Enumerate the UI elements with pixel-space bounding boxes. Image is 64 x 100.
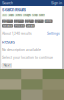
button[interactable]: Shop (32, 14, 38, 16)
staticText: Sign in (51, 1, 62, 5)
button[interactable]: News (15, 14, 22, 16)
staticText: Review (26, 18, 33, 24)
staticText: Hours (36, 18, 43, 24)
button[interactable]: All (2, 14, 7, 16)
button[interactable]: Sign in (51, 1, 62, 5)
staticText: Nearby (3, 24, 12, 27)
button[interactable]: Images (23, 14, 31, 16)
staticText: News (15, 14, 21, 17)
staticText: Next (3, 63, 10, 67)
staticText: Photos (15, 18, 23, 24)
button[interactable]: Overview (2, 19, 13, 23)
staticText: Settings (47, 32, 60, 35)
button[interactable]: Hours (35, 19, 44, 23)
staticText: About 1,240 results (2, 32, 32, 35)
staticText: Prices (15, 24, 24, 27)
staticText: All (3, 14, 7, 17)
button[interactable]: More (38, 14, 45, 16)
staticText: Info (46, 20, 52, 23)
staticText: Images (23, 14, 30, 17)
button[interactable]: Next (2, 63, 12, 67)
staticText: Maps (9, 14, 14, 17)
staticText: Select your location to continue (2, 56, 53, 59)
staticText: Deals (27, 24, 34, 27)
staticText: Results (2, 40, 15, 44)
button[interactable]: Prices (14, 24, 25, 28)
staticText: More (39, 14, 44, 17)
button[interactable]: Settings (47, 32, 60, 35)
staticText: Search results (2, 7, 26, 12)
staticText: Search (2, 1, 13, 5)
staticText: Overview (3, 18, 12, 24)
staticText: Shop (32, 14, 37, 17)
staticText: No description available (2, 48, 41, 52)
button[interactable]: Review (25, 19, 34, 23)
button[interactable]: Photos (14, 19, 24, 23)
button[interactable]: Deals (26, 24, 35, 28)
button[interactable]: Maps (8, 14, 14, 16)
button[interactable]: Info (45, 19, 53, 23)
button[interactable]: Nearby (2, 24, 13, 28)
button[interactable]: Search (2, 1, 13, 5)
